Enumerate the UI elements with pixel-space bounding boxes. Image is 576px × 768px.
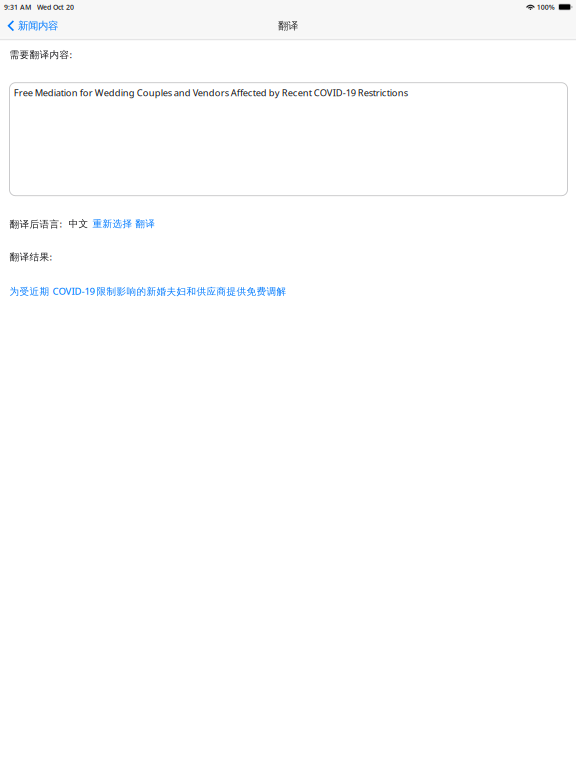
staticText: 翻译结果: — [9, 250, 52, 263]
staticText: 翻译 — [278, 19, 298, 32]
staticText: 翻译 — [135, 218, 155, 230]
button[interactable]: 重新选择 — [92, 218, 133, 230]
button[interactable]: 返回 新闻内容 — [0, 14, 64, 38]
staticText: 100% — [537, 2, 555, 12]
staticText: 为受近期 COVID-19 限制影响的新婚夫妇和供应商提供免费调解 — [9, 284, 286, 298]
staticText: Free Mediation for Wedding Couples and V… — [14, 86, 408, 99]
staticText: 重新选择 — [92, 218, 132, 230]
staticText: 需要翻译内容: — [9, 48, 72, 61]
staticText: Wed Oct 20 — [37, 2, 74, 12]
button[interactable]: 翻译 — [135, 218, 156, 230]
staticText: 9:31 AM — [4, 2, 31, 12]
staticText: 新闻内容 — [18, 19, 58, 32]
button[interactable]: Free Mediation for Wedding Couples and V… — [9, 83, 567, 196]
staticText: 翻译后语言: — [9, 217, 62, 230]
staticText: 中文 — [68, 218, 88, 230]
